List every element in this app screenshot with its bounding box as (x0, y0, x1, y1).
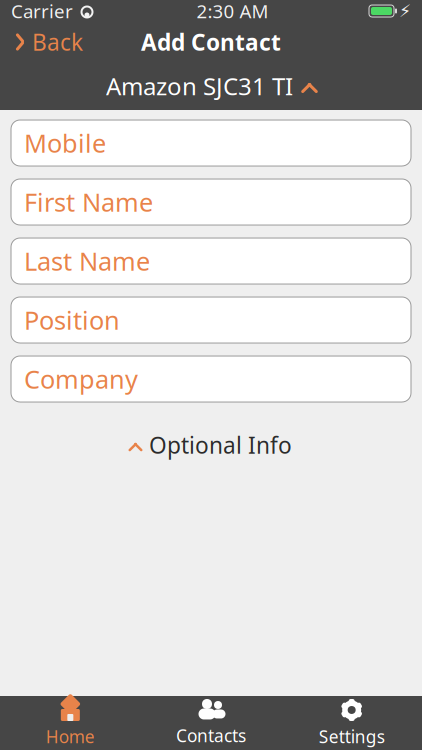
staticText: Settings (319, 725, 385, 748)
staticText: Company (24, 362, 138, 396)
button[interactable]: Mobile (11, 120, 411, 166)
staticText: First Name (24, 185, 153, 219)
button[interactable]: Settings (281, 696, 422, 750)
staticText: Home (46, 725, 95, 748)
staticText: ⚡︎ (399, 1, 411, 21)
button[interactable]: Position (11, 297, 411, 343)
button[interactable]: Amazon SJC31 TI (0, 62, 422, 110)
staticText: Mobile (24, 126, 106, 160)
staticText: Amazon SJC31 TI (106, 70, 293, 102)
button[interactable]: Optional Info (118, 422, 304, 468)
staticText: Back (32, 27, 83, 57)
button[interactable]: Back (0, 22, 97, 62)
button[interactable]: Company (11, 356, 411, 402)
button[interactable]: Last Name (11, 238, 411, 284)
staticText: Add Contact (141, 27, 281, 57)
staticText: Position (24, 303, 120, 337)
staticText: Last Name (24, 244, 150, 278)
staticText: 2:30 AM (196, 0, 268, 23)
button[interactable]: Contacts (141, 696, 281, 750)
staticText: Carrier (11, 0, 73, 23)
button[interactable]: Home (0, 696, 141, 750)
staticText: Optional Info (149, 430, 292, 460)
button[interactable]: First Name (11, 179, 411, 225)
staticText: Contacts (176, 724, 246, 747)
